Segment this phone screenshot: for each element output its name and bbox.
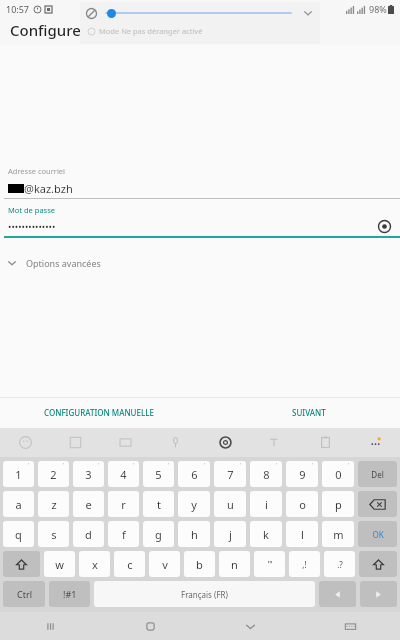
button[interactable]: Effacer [358,491,397,517]
staticText: i [265,497,268,512]
button[interactable]: 3 [73,461,104,487]
button[interactable]: Accueil [100,612,200,640]
staticText: Configurer un [10,20,110,40]
button[interactable]: 9 [286,461,318,487]
button[interactable]: 5 [143,461,174,487]
other: Expand [302,7,314,19]
button[interactable]: Retour [200,612,300,640]
button[interactable]: ,! [289,551,320,577]
staticText: h [191,527,198,542]
button[interactable]: Afficher le mot de passe [376,218,392,234]
staticText: ' [168,462,170,469]
button[interactable]: 1 [3,461,34,487]
staticText: Del [371,469,384,480]
button[interactable]: GIF [100,428,150,457]
staticText: Français (FR) [181,589,228,600]
button[interactable]: 8 [250,461,282,487]
button[interactable]: o [286,491,318,517]
button[interactable]: v [149,551,180,577]
button[interactable]: b [184,551,215,577]
button[interactable]: d [73,521,104,547]
staticText: ,! [302,559,307,570]
button[interactable]: Paramètres [200,428,250,457]
button[interactable]: i [250,491,282,517]
button[interactable]: e [73,491,104,517]
button[interactable]: 7 [214,461,246,487]
button[interactable]: Maj [359,551,397,577]
staticText: z [51,497,57,512]
staticText: ' [240,462,242,469]
button[interactable]: SUIVANT [288,403,330,422]
staticText: c [127,557,133,572]
button[interactable]: t [143,491,174,517]
button[interactable]: Stickers [50,428,100,457]
staticText: o [299,497,306,512]
button[interactable]: c [114,551,145,577]
button[interactable]: l [286,521,318,547]
button[interactable]: Presse-papiers [300,428,350,457]
button[interactable]: g [143,521,174,547]
staticText: •••••••••••••• [8,220,56,232]
staticText: v [162,557,168,572]
button[interactable]: Del [358,461,397,487]
button[interactable]: q [3,521,34,547]
staticText: f [122,527,126,542]
staticText: ' [348,462,350,469]
button[interactable]: 6 [178,461,210,487]
button[interactable]: n [219,551,250,577]
button[interactable]: Maj [3,551,40,577]
button[interactable]: u [214,491,246,517]
button[interactable]: Emoji [0,428,50,457]
button[interactable]: p [322,491,354,517]
button[interactable]: z [38,491,69,517]
button[interactable]: y [178,491,210,517]
staticText: s [51,527,57,542]
staticText: 2 [50,467,57,482]
staticText: 98% [369,3,387,15]
button[interactable]: 2 [38,461,69,487]
staticText: p [335,497,342,512]
button[interactable]: a [3,491,34,517]
button[interactable]: Droite [360,581,397,607]
button[interactable]: Français (FR) [94,581,315,607]
button[interactable]: 0 [322,461,354,487]
button[interactable]: h [178,521,210,547]
staticText: j [229,527,232,542]
staticText: 6 [191,467,198,482]
button[interactable]: Récents [0,612,100,640]
button[interactable]: r [108,491,139,517]
button[interactable]: 4 [108,461,139,487]
other: Mute [86,8,97,19]
staticText: CONFIGURATION MANUELLE [44,407,154,418]
button[interactable]: Voix [150,428,200,457]
button[interactable]: m [322,521,354,547]
button[interactable]: OK [358,521,397,547]
button[interactable]: Options avancées [0,252,400,274]
button[interactable]: s [38,521,69,547]
staticText: Adresse courriel [8,166,66,176]
staticText: ' [312,462,314,469]
staticText: SUIVANT [292,407,326,418]
staticText: g [155,527,162,542]
staticText: b [196,557,203,572]
button[interactable]: CONFIGURATION MANUELLE [40,403,158,422]
button[interactable]: w [44,551,75,577]
button[interactable]: x [79,551,110,577]
staticText: m [333,527,344,542]
staticText: a [15,497,22,512]
staticText: e [85,497,92,512]
button[interactable]: '" [254,551,285,577]
button[interactable]: Plus [350,428,400,457]
button[interactable]: f [108,521,139,547]
button[interactable]: j [214,521,246,547]
button[interactable]: Clavier [300,612,400,640]
staticText: ' [133,462,135,469]
button[interactable]: Ctrl [3,581,45,607]
button[interactable]: Gauche [319,581,356,607]
staticText: ' [276,462,278,469]
button[interactable]: k [250,521,282,547]
button[interactable]: .? [324,551,355,577]
staticText: ' [204,462,206,469]
button[interactable]: !#1 [49,581,90,607]
